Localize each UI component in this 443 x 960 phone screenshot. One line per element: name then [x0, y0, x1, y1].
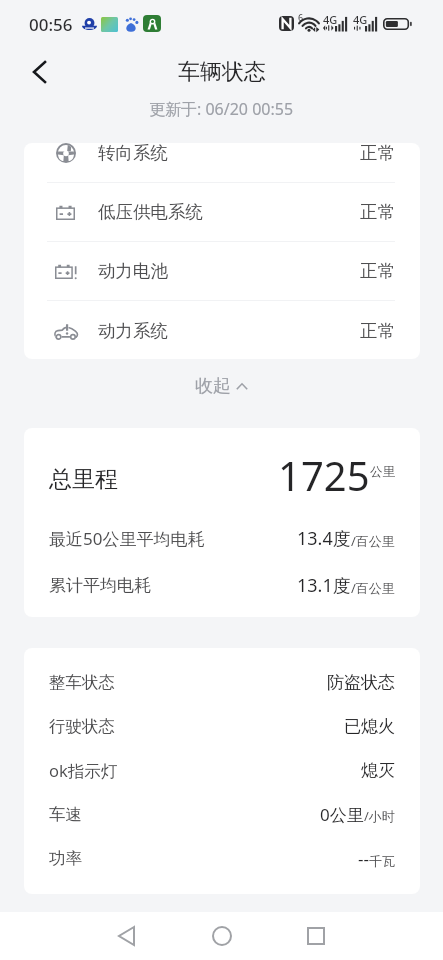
staticText: 转向系统: [98, 143, 168, 164]
staticText: 正常: [360, 260, 395, 282]
staticText: 整车状态: [49, 672, 115, 693]
staticText: 收起: [195, 375, 231, 398]
button[interactable]: 行驶状态: [24, 704, 420, 748]
staticText: 低压供电系统: [98, 201, 203, 223]
button[interactable]: 收起: [0, 365, 443, 407]
button[interactable]: 功率: [24, 836, 420, 880]
button[interactable]: Back: [108, 918, 144, 954]
staticText: 00:56: [29, 13, 73, 36]
staticText: 防盗状态: [327, 672, 395, 693]
staticText: 车速: [49, 804, 82, 825]
staticText: 公里: [370, 464, 395, 480]
staticText: 正常: [360, 201, 395, 223]
button[interactable]: 动力电池: [24, 242, 420, 300]
staticText: 4G: [323, 12, 338, 27]
staticText: 总里程: [49, 465, 118, 494]
staticText: --: [358, 847, 369, 870]
staticText: /百公里: [351, 532, 395, 550]
staticText: 行驶状态: [49, 716, 115, 737]
staticText: 13.1度: [297, 573, 351, 598]
staticText: 最近50公里平均电耗: [49, 527, 205, 550]
staticText: 动力电池: [98, 260, 168, 282]
staticText: 千瓦: [369, 853, 395, 869]
staticText: 动力系统: [98, 320, 168, 342]
staticText: 13.4度: [297, 526, 351, 551]
staticText: ok指示灯: [49, 759, 118, 782]
staticText: /百公里: [351, 579, 395, 597]
button[interactable]: 低压供电系统: [24, 183, 420, 241]
button[interactable]: Recents: [298, 918, 334, 954]
staticText: 功率: [49, 848, 82, 869]
staticText: 1725: [278, 448, 370, 502]
staticText: 车辆状态: [178, 58, 266, 86]
button[interactable]: Home: [204, 918, 240, 954]
staticText: 已熄火: [344, 716, 395, 737]
staticText: 累计平均电耗: [49, 575, 151, 596]
staticText: 4G: [353, 12, 368, 27]
staticText: 更新于: 06/20 00:55: [149, 98, 294, 120]
staticText: 6: [298, 11, 304, 23]
button[interactable]: Back: [21, 54, 57, 90]
staticText: /小时: [364, 807, 395, 825]
button[interactable]: ok指示灯: [24, 748, 420, 792]
button[interactable]: 车速: [24, 792, 420, 836]
staticText: 正常: [360, 143, 395, 164]
staticText: 熄灭: [361, 760, 395, 781]
button[interactable]: 动力系统: [24, 302, 420, 359]
staticText: 0公里: [320, 803, 364, 826]
staticText: 正常: [360, 320, 395, 342]
button[interactable]: 整车状态: [24, 660, 420, 704]
button[interactable]: 转向系统: [24, 143, 420, 182]
